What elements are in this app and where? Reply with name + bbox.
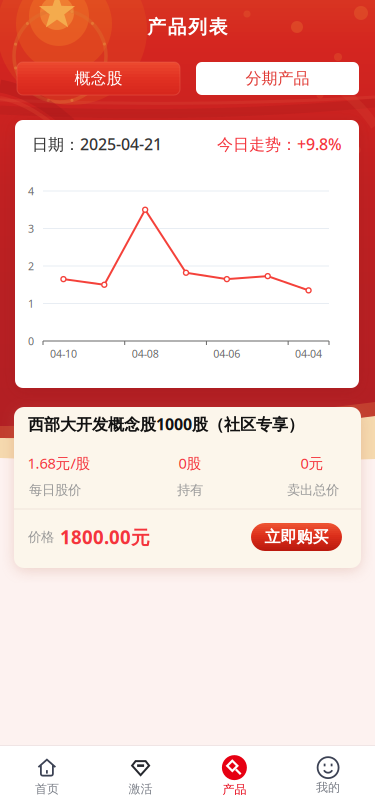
staticText: 今日走势：+9.8%	[217, 133, 342, 155]
staticText: 首页	[35, 782, 59, 796]
button[interactable]: 首页	[0, 746, 93, 806]
staticText: 4	[28, 184, 34, 198]
staticText: 1.68元/股	[27, 453, 90, 473]
button[interactable]: 立即购买	[251, 523, 342, 551]
staticText: 分期产品	[245, 69, 309, 88]
staticText: 2	[28, 259, 34, 273]
staticText: 04-10	[50, 346, 77, 361]
staticText: 产品	[222, 782, 246, 797]
staticText: 0股	[178, 453, 201, 473]
staticText: 1800.00元	[60, 525, 150, 549]
staticText: 04-04	[295, 346, 322, 361]
button[interactable]: 分期产品	[196, 62, 359, 95]
staticText: 概念股	[74, 69, 122, 88]
button[interactable]: 我的	[282, 746, 375, 806]
staticText: 04-06	[213, 346, 240, 361]
staticText: 西部大开发概念股1000股（社区专享）	[28, 413, 304, 435]
staticText: 0元	[300, 453, 323, 473]
staticText: 04-08	[132, 346, 159, 361]
staticText: 每日股价	[29, 482, 81, 498]
staticText: 持有	[177, 482, 203, 498]
staticText: 产品列表	[147, 15, 228, 38]
staticText: 我的	[316, 780, 340, 795]
staticText: 激活	[129, 782, 153, 796]
staticText: 价格	[28, 529, 54, 545]
staticText: 立即购买	[264, 527, 328, 547]
button[interactable]: 概念股	[17, 62, 180, 95]
staticText: 卖出总价	[287, 482, 339, 498]
staticText: 日期：2025-04-21	[32, 133, 162, 155]
button[interactable]: 激活	[94, 746, 187, 806]
staticText: 1	[28, 296, 34, 311]
staticText: 0	[28, 334, 34, 348]
button[interactable]: 产品	[188, 746, 281, 806]
staticText: 3	[28, 221, 34, 236]
